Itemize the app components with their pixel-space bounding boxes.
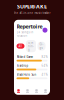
- staticText: the all-in-one music tracker: [13, 11, 50, 15]
- staticText: Wicked Game: [16, 55, 33, 59]
- staticText: All: [18, 44, 22, 48]
- button[interactable]: Learning: [26, 40, 36, 52]
- staticText: Gigs: [39, 43, 43, 50]
- button[interactable]: Tab: [32, 89, 41, 93]
- button[interactable]: Tab: [23, 89, 32, 93]
- staticText: SUPERFAKE: [17, 3, 47, 10]
- staticText: 82%: [41, 55, 47, 59]
- staticText: 64%: [41, 64, 47, 67]
- staticText: Teardrop: [16, 64, 28, 67]
- staticText: Repertoire: [16, 23, 42, 30]
- staticText: 24 songs in rotation: [16, 30, 33, 37]
- staticText: Learning: [28, 41, 34, 51]
- button[interactable]: Gigs: [37, 42, 45, 50]
- staticText: 41%: [41, 73, 47, 76]
- button[interactable]: Tab: [41, 89, 50, 93]
- button[interactable]: Tab: [14, 89, 23, 93]
- staticText: Black Hole Sun: [16, 73, 36, 76]
- button[interactable]: All: [16, 43, 24, 49]
